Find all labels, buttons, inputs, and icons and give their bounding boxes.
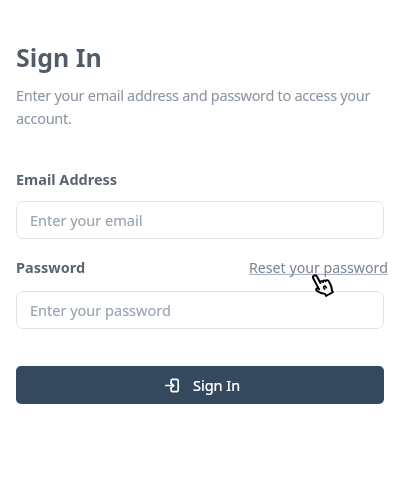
staticText: Reset your password [249, 258, 388, 277]
staticText: Email Address [16, 169, 118, 189]
staticText: Sign In [16, 40, 102, 74]
button[interactable]: Enter your email [16, 201, 384, 239]
staticText: Password [16, 257, 86, 277]
button[interactable]: Reset your password [249, 258, 388, 277]
staticText: account. [16, 108, 72, 128]
button[interactable]: Enter your password [16, 291, 384, 329]
button[interactable]: Sign In [16, 366, 384, 404]
staticText: Sign In [193, 375, 241, 395]
staticText: Enter your email address and password to… [16, 85, 371, 105]
staticText: Enter your password [30, 300, 171, 320]
staticText: Enter your email [30, 210, 143, 230]
